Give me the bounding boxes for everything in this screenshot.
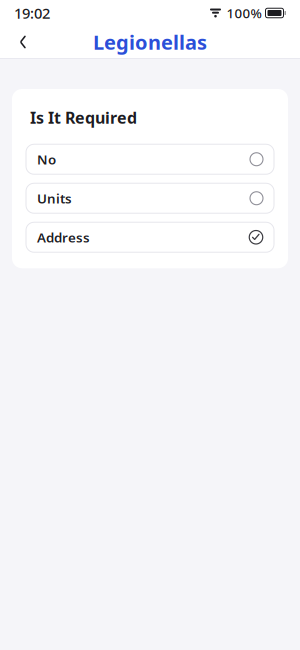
button[interactable]: Back — [6, 25, 40, 59]
staticText: Legionellas — [93, 29, 207, 55]
button[interactable]: Units — [26, 183, 274, 213]
staticText: Units — [37, 189, 72, 207]
staticText: Address — [37, 228, 90, 246]
staticText: 100% — [226, 4, 261, 22]
staticText: Is It Required — [30, 107, 137, 128]
button[interactable]: Address — [26, 222, 274, 252]
staticText: No — [37, 150, 56, 168]
button[interactable]: No — [26, 144, 274, 174]
staticText: 19:02 — [14, 3, 50, 23]
